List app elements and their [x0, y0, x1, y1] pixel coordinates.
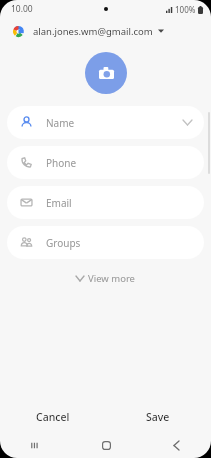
staticText: Name — [46, 116, 75, 130]
staticText: Cancel — [36, 410, 70, 424]
button[interactable]: Groups — [7, 226, 204, 259]
staticText: 10.00 — [11, 3, 33, 15]
button[interactable]: Save — [105, 402, 211, 432]
staticText: Groups — [46, 236, 81, 250]
staticText: 100% — [175, 4, 196, 15]
button[interactable]: Phone — [7, 146, 204, 179]
button[interactable]: Name — [7, 106, 204, 139]
staticText: Phone — [46, 156, 77, 170]
button[interactable]: alan.jones.wm@gmail.com — [0, 18, 211, 44]
button[interactable]: View more — [68, 268, 143, 289]
button[interactable]: Email — [7, 186, 204, 219]
staticText: Save — [146, 410, 170, 424]
staticText: alan.jones.wm@gmail.com — [33, 25, 153, 38]
button[interactable]: Back — [141, 432, 211, 458]
button[interactable]: Add photo — [85, 52, 127, 94]
staticText: View more — [88, 272, 135, 285]
button[interactable]: Recents — [0, 432, 71, 458]
button[interactable]: Cancel — [0, 402, 105, 432]
staticText: Email — [46, 196, 72, 210]
button[interactable]: Home — [71, 432, 141, 458]
